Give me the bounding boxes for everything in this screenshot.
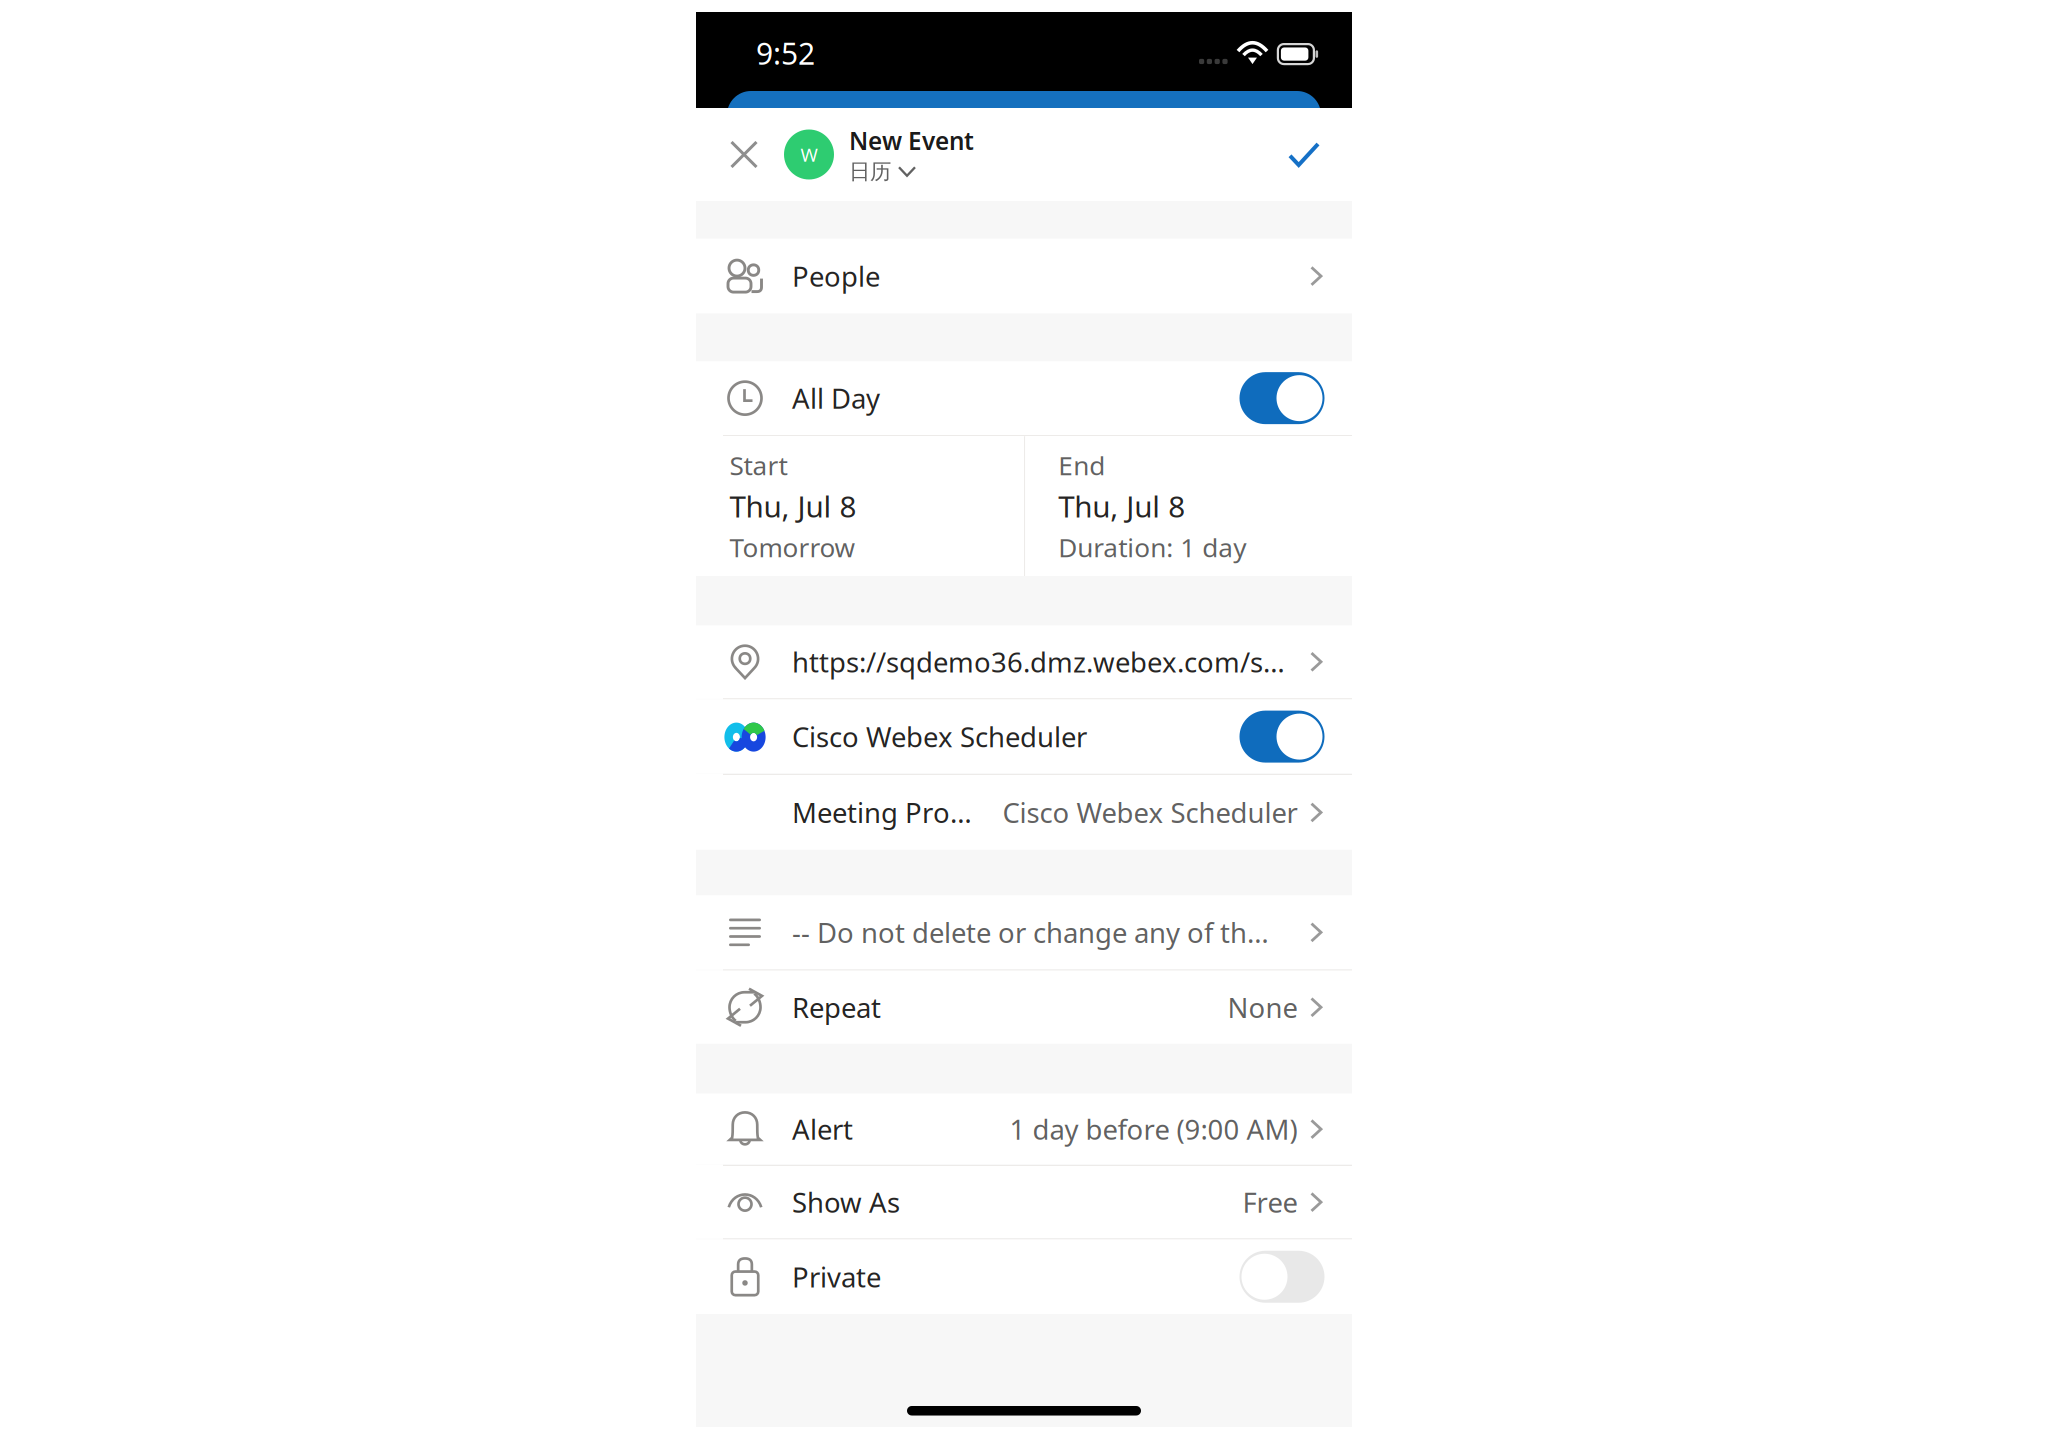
button[interactable]: Cisco Webex Scheduler (696, 699, 1352, 774)
staticText: Free (1242, 1183, 1297, 1221)
button[interactable]: All Day (696, 361, 1352, 435)
staticText: Alert (792, 1110, 853, 1148)
staticText: W (800, 142, 817, 167)
staticText: People (792, 257, 880, 295)
button[interactable]: Done (1256, 108, 1352, 201)
staticText: Tomorrow (729, 529, 855, 565)
staticText: https://sqdemo36.dmz.webex.com/s… (792, 643, 1285, 680)
staticText: Start (729, 447, 787, 483)
button[interactable]: Meeting Pro… (696, 775, 1352, 850)
staticText: End (1058, 447, 1105, 483)
staticText: Thu, Jul 8 (729, 486, 856, 526)
button[interactable]: Close (696, 108, 784, 201)
button[interactable]: End (1025, 436, 1352, 576)
staticText: 1 day before (9:00 AM) (1009, 1110, 1297, 1148)
button[interactable]: -- Do not delete or change any of th… (696, 895, 1352, 969)
button[interactable]: Start (696, 436, 1024, 576)
staticText: Repeat (792, 988, 881, 1026)
staticText: Duration: 1 day (1058, 529, 1246, 565)
staticText: -- Do not delete or change any of th… (792, 914, 1269, 951)
button[interactable]: Repeat (696, 971, 1352, 1044)
staticText: Cisco Webex Scheduler (792, 718, 1087, 755)
staticText: Meeting Pro… (792, 794, 972, 831)
staticText: 日历 (849, 158, 891, 185)
staticText: Show As (792, 1183, 900, 1221)
staticText: New Event (849, 124, 974, 157)
button[interactable]: Private (696, 1239, 1352, 1314)
button[interactable]: https://sqdemo36.dmz.webex.com/s… (696, 625, 1352, 698)
staticText: Thu, Jul 8 (1058, 486, 1185, 526)
staticText: 9:52 (756, 33, 815, 73)
button[interactable]: Alert (696, 1093, 1352, 1165)
button[interactable]: Show As (696, 1166, 1352, 1238)
staticText: All Day (792, 379, 880, 417)
staticText: Cisco Webex Scheduler (1002, 794, 1297, 831)
staticText: None (1227, 988, 1297, 1026)
staticText: Private (792, 1258, 881, 1295)
button[interactable]: People (696, 239, 1352, 314)
